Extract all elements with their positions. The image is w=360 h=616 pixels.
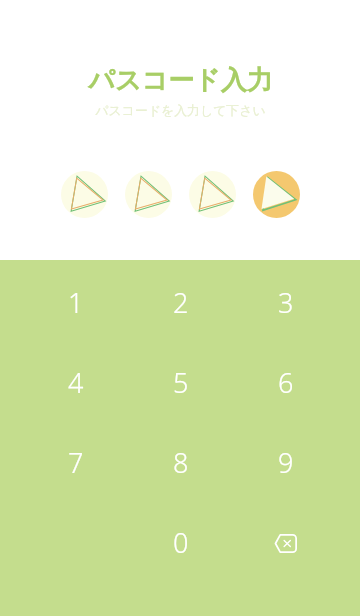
staticText: 0 xyxy=(173,524,189,561)
staticText: 7 xyxy=(68,444,84,481)
staticText: 8 xyxy=(173,444,189,481)
button[interactable]: Delete xyxy=(233,502,338,582)
staticText: 1 xyxy=(68,284,84,321)
button[interactable]: 2 xyxy=(128,262,233,342)
staticText: 5 xyxy=(173,364,189,401)
button[interactable]: 9 xyxy=(233,422,338,502)
button[interactable]: 8 xyxy=(128,422,233,502)
staticText: パスコード入力 xyxy=(88,64,273,97)
button[interactable]: 1 xyxy=(23,262,128,342)
button[interactable]: Digit empty xyxy=(189,171,236,218)
staticText: 6 xyxy=(278,364,294,401)
button[interactable]: Digit empty xyxy=(125,171,172,218)
button[interactable]: 6 xyxy=(233,342,338,422)
button[interactable]: 4 xyxy=(23,342,128,422)
staticText: 2 xyxy=(173,284,189,321)
staticText: 9 xyxy=(278,444,294,481)
staticText: 3 xyxy=(278,284,294,321)
button[interactable]: 3 xyxy=(233,262,338,342)
button[interactable]: Digit entered xyxy=(253,171,300,218)
button[interactable]: 5 xyxy=(128,342,233,422)
staticText: パスコードを入力して下さい xyxy=(95,103,266,119)
button[interactable]: 0 xyxy=(128,502,233,582)
button[interactable]: 7 xyxy=(23,422,128,502)
staticText: 4 xyxy=(68,364,84,401)
button[interactable]: Digit empty xyxy=(61,171,108,218)
